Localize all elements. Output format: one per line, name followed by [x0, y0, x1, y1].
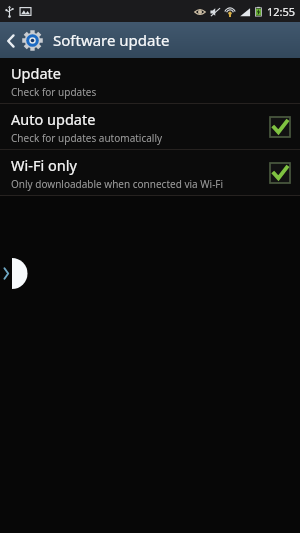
- staticText: Check for updates: [11, 85, 97, 99]
- button[interactable]: Navigate up: [0, 26, 45, 55]
- button[interactable]: Auto update checkbox: [269, 116, 291, 138]
- staticText: Check for updates automatically: [11, 131, 163, 145]
- staticText: Software update: [53, 30, 170, 50]
- button[interactable]: Wi-Fi only: [0, 150, 300, 195]
- staticText: Update: [11, 63, 61, 83]
- staticText: Wi-Fi only: [11, 155, 77, 175]
- button[interactable]: Open panel: [0, 258, 12, 289]
- button[interactable]: Update: [0, 58, 300, 103]
- staticText: Auto update: [11, 109, 96, 129]
- button[interactable]: Auto update: [0, 104, 300, 149]
- staticText: 12:55: [267, 4, 296, 19]
- staticText: Only downloadable when connected via Wi-…: [11, 177, 224, 191]
- button[interactable]: Wi-Fi only checkbox: [269, 162, 291, 184]
